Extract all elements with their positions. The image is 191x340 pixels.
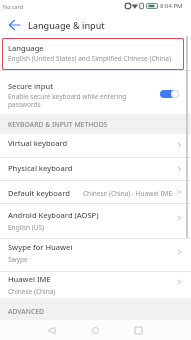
staticText: No card [3,3,24,10]
staticText: Chinese (China) - Huawei IME [83,189,173,198]
staticText: Physical keyboard [8,163,73,173]
staticText: Default keyboard [8,188,70,198]
staticText: Swype for Huawei [8,242,73,252]
staticText: passwords [8,100,41,109]
button[interactable]: Recents [128,320,148,340]
staticText: Language & input [28,19,105,31]
button[interactable] [0,134,191,157]
button[interactable]: Back [41,320,61,340]
staticText: Android Keyboard (AOSP) [8,210,99,220]
staticText: ADVANCED [8,307,45,316]
button[interactable] [0,158,191,180]
staticText: Virtual keyboard [8,138,68,148]
button[interactable] [0,239,191,271]
staticText: Swype [8,255,28,264]
button[interactable] [0,181,191,203]
staticText: Enable secure keyboard while entering [8,92,127,101]
button[interactable] [0,272,191,298]
button[interactable]: Home [85,320,105,340]
staticText: 8:04 PM [160,2,183,10]
staticText: English (US) [8,223,45,232]
staticText: Secure input [8,81,54,91]
staticText: English (United States) and Simplified C… [8,54,171,63]
button[interactable] [0,71,191,114]
staticText: Language [8,43,44,53]
button[interactable]: Back [0,12,28,38]
button[interactable] [0,204,191,238]
button[interactable] [0,38,191,70]
staticText: Chinese (China) [8,287,56,296]
staticText: Huawei IME [8,274,51,284]
staticText: KEYBOARD & INPUT METHODS [8,120,108,129]
